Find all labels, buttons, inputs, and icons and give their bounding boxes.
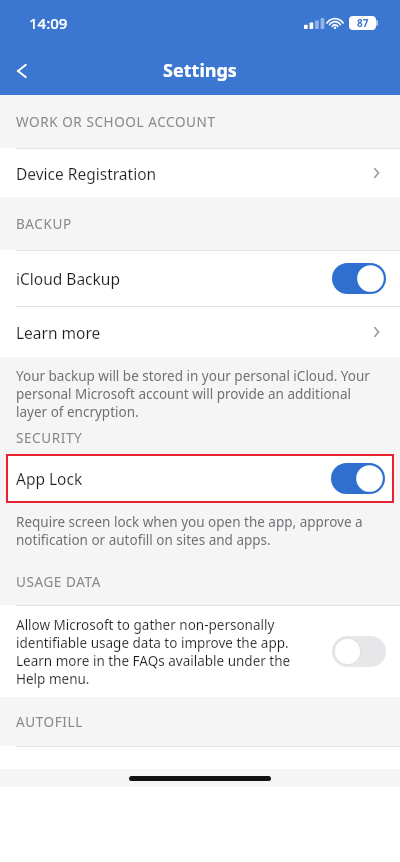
button[interactable]: iCloud Backup — [0, 251, 400, 306]
staticText: 14:09 — [29, 13, 68, 33]
staticText: Your backup will be stored in your perso… — [16, 367, 380, 421]
button[interactable]: Device Registration — [0, 149, 400, 197]
staticText: BACKUP — [16, 215, 72, 233]
staticText: Settings — [163, 58, 237, 83]
button[interactable]: Learn more — [0, 307, 400, 357]
staticText: App Lock — [16, 468, 331, 489]
button[interactable]: Back — [0, 49, 44, 93]
button[interactable]: Allow Microsoft to gather non-personally… — [0, 606, 400, 697]
staticText: SECURITY — [16, 429, 83, 447]
staticText: Require screen lock when you open the ap… — [16, 513, 380, 549]
staticText: iCloud Backup — [16, 268, 332, 289]
staticText: Learn more — [16, 322, 368, 343]
staticText: WORK OR SCHOOL ACCOUNT — [16, 113, 216, 131]
staticText: Device Registration — [16, 163, 368, 184]
staticText: 87 — [357, 16, 369, 30]
button[interactable]: App Lock — [6, 454, 394, 503]
staticText: Allow Microsoft to gather non-personally… — [16, 616, 322, 688]
staticText: USAGE DATA — [16, 573, 101, 591]
staticText: AUTOFILL — [16, 713, 83, 731]
